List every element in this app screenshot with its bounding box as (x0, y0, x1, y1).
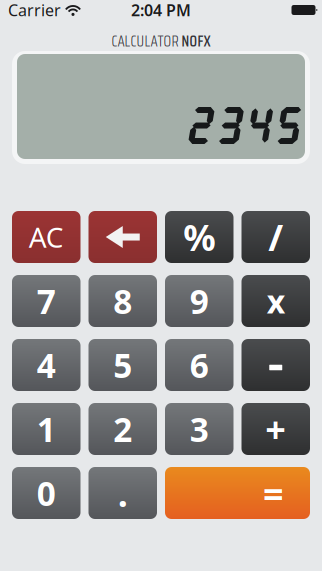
staticText: 1 (37, 407, 56, 451)
button[interactable]: 7 (12, 275, 80, 327)
button[interactable]: 6 (165, 339, 233, 391)
staticText: 4 (37, 343, 56, 387)
button[interactable]: x (241, 275, 310, 327)
button[interactable]: 3 (165, 403, 233, 455)
staticText: 5 (113, 343, 132, 387)
button[interactable] (241, 339, 310, 391)
button[interactable]: % (165, 211, 233, 263)
staticText: / (268, 213, 283, 261)
staticText: x (267, 280, 285, 322)
staticText: 9 (190, 279, 209, 323)
staticText: 2:04 PM (131, 0, 191, 21)
button[interactable]: + (241, 403, 310, 455)
staticText: 7 (37, 279, 56, 323)
button[interactable]: 4 (12, 339, 80, 391)
staticText: . (118, 469, 128, 517)
staticText: CALCULATOR (111, 30, 178, 53)
staticText: = (263, 469, 284, 517)
staticText: Carrier (8, 0, 61, 21)
button[interactable]: 1 (12, 403, 80, 455)
button[interactable] (88, 211, 157, 263)
staticText: NOFX (181, 30, 210, 53)
button[interactable]: . (88, 467, 157, 519)
button[interactable]: 8 (88, 275, 157, 327)
button[interactable]: AC (12, 211, 80, 263)
staticText: 2 (113, 407, 132, 451)
button[interactable]: 2 (88, 403, 157, 455)
staticText: 0 (37, 471, 56, 515)
staticText: + (265, 405, 286, 453)
staticText: 8 (113, 279, 132, 323)
staticText: 6 (190, 343, 209, 387)
staticText: 3 (190, 407, 209, 451)
button[interactable]: = (165, 467, 310, 519)
staticText: AC (29, 218, 64, 256)
button[interactable]: 5 (88, 339, 157, 391)
staticText: % (183, 213, 215, 261)
button[interactable]: 9 (165, 275, 233, 327)
button[interactable]: 0 (12, 467, 80, 519)
button[interactable]: / (241, 211, 310, 263)
